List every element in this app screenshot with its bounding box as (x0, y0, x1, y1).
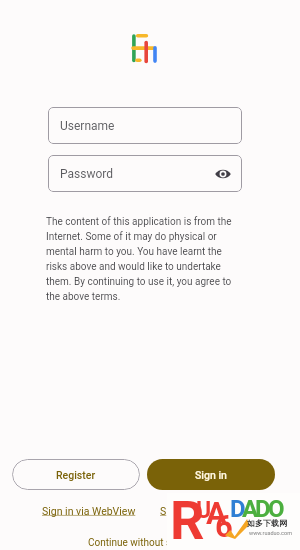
button[interactable]: S (160, 502, 257, 520)
staticText: S (160, 505, 167, 517)
staticText: 如多下载网 (247, 518, 287, 528)
staticText: www.ruaduo.com (249, 530, 292, 536)
button[interactable]: Show password (211, 162, 235, 186)
staticText: A (242, 495, 259, 523)
staticText: Username (60, 119, 115, 133)
staticText: Password (60, 167, 114, 181)
staticText: The content of this application is from … (46, 216, 239, 302)
staticText: D (255, 495, 271, 523)
staticText: Continue without signing in (88, 537, 204, 550)
button[interactable]: Sign in via WebView (40, 502, 137, 520)
staticText: Register (56, 469, 96, 481)
button[interactable]: Password (48, 155, 242, 192)
staticText: 6 (215, 508, 233, 544)
staticText: Sign in (195, 469, 227, 481)
button[interactable]: Sign in (147, 459, 275, 490)
button[interactable]: Continue without signing in (88, 537, 204, 550)
button[interactable]: Register (12, 459, 140, 490)
staticText: D (230, 495, 246, 523)
button[interactable]: Username (48, 107, 242, 144)
staticText: A (206, 495, 227, 531)
staticText: Sign in via WebView (42, 505, 136, 517)
staticText: R (170, 489, 205, 547)
staticText: O (268, 495, 285, 523)
staticText: U (196, 497, 212, 524)
